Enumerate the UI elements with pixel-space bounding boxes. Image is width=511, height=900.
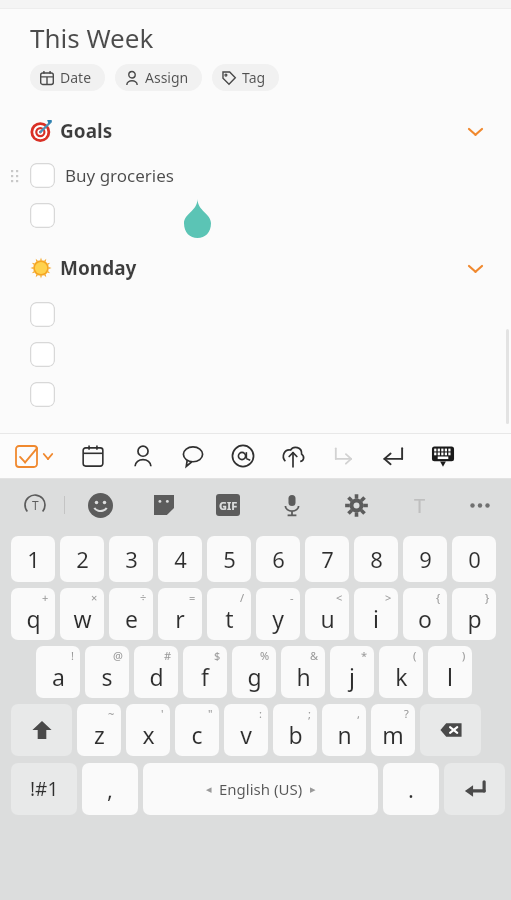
button[interactable]: # xyxy=(134,646,178,698)
button[interactable]: 8 xyxy=(354,536,398,582)
button[interactable]: Checkbox xyxy=(30,302,55,327)
button[interactable]: Collapse xyxy=(457,116,493,146)
button[interactable]: Comment xyxy=(168,434,218,478)
button[interactable]: Checkbox xyxy=(30,203,55,228)
button[interactable]: Shift xyxy=(11,704,72,756)
staticText: z xyxy=(94,719,105,750)
button[interactable]: ' xyxy=(126,704,170,756)
button[interactable]: 2 xyxy=(60,536,104,582)
button[interactable]: 9 xyxy=(403,536,447,582)
button[interactable]: " xyxy=(175,704,219,756)
button[interactable]: Checkbox xyxy=(30,382,55,407)
button[interactable]: } xyxy=(452,588,496,640)
button[interactable]: Calendar xyxy=(68,434,118,478)
button[interactable]: Checklist xyxy=(0,434,68,478)
staticText: * xyxy=(361,648,368,663)
button[interactable]: Assign xyxy=(115,64,202,91)
button[interactable]: ; xyxy=(273,704,317,756)
button[interactable]: ◂ xyxy=(143,763,378,815)
button[interactable]: & xyxy=(281,646,325,698)
staticText: x xyxy=(142,719,155,750)
staticText: j xyxy=(349,661,355,692)
button[interactable]: Checkbox xyxy=(0,155,511,195)
button[interactable]: / xyxy=(207,588,251,640)
staticText: b xyxy=(288,719,303,750)
button[interactable]: Backspace xyxy=(420,704,481,756)
staticText: Tag xyxy=(242,68,266,87)
button[interactable]: < xyxy=(305,588,349,640)
button[interactable]: Goals xyxy=(0,116,511,146)
button[interactable]: { xyxy=(403,588,447,640)
button[interactable]: Voice input xyxy=(271,484,313,526)
button[interactable]: New line xyxy=(368,434,418,478)
button[interactable]: ~ xyxy=(77,704,121,756)
staticText: ~ xyxy=(108,706,115,721)
button[interactable]: , xyxy=(322,704,366,756)
button[interactable]: ( xyxy=(379,646,423,698)
button[interactable]: Keyboard xyxy=(418,434,468,478)
button[interactable]: 3 xyxy=(109,536,153,582)
staticText: { xyxy=(436,590,441,605)
button[interactable]: Checkbox xyxy=(0,195,511,235)
button[interactable]: , xyxy=(82,763,138,815)
button[interactable]: Sticker xyxy=(143,484,185,526)
staticText: v xyxy=(240,719,252,750)
button[interactable]: !#1 xyxy=(11,763,77,815)
button[interactable]: Settings xyxy=(335,484,377,526)
button[interactable]: Emoji xyxy=(79,484,121,526)
button[interactable]: : xyxy=(224,704,268,756)
button[interactable]: More options xyxy=(459,484,501,526)
staticText: w xyxy=(73,603,92,634)
button[interactable]: Collapse xyxy=(457,253,493,283)
button[interactable]: - xyxy=(256,588,300,640)
button[interactable]: Assignee xyxy=(118,434,168,478)
button[interactable]: ! xyxy=(36,646,80,698)
button[interactable]: $ xyxy=(183,646,227,698)
button[interactable]: . xyxy=(383,763,439,815)
staticText: ; xyxy=(308,706,311,721)
button[interactable]: + xyxy=(11,588,55,640)
button[interactable]: GIF xyxy=(207,484,249,526)
button[interactable]: ÷ xyxy=(109,588,153,640)
button[interactable]: 1 xyxy=(11,536,55,582)
button[interactable]: Date xyxy=(30,64,105,91)
button[interactable]: 0 xyxy=(452,536,496,582)
button[interactable]: Indent xyxy=(318,434,368,478)
button[interactable]: 5 xyxy=(207,536,251,582)
staticText: 8 xyxy=(370,544,383,574)
button[interactable]: Monday xyxy=(0,253,511,283)
button[interactable]: Checkbox xyxy=(30,342,55,367)
button[interactable]: Translate xyxy=(14,484,56,526)
staticText: l xyxy=(447,661,453,692)
staticText: t xyxy=(225,603,234,634)
staticText: ( xyxy=(413,648,417,663)
staticText: This Week xyxy=(30,20,154,55)
staticText: & xyxy=(310,648,319,663)
button[interactable]: Tag xyxy=(212,64,279,91)
button[interactable]: Handwriting xyxy=(399,484,441,526)
button[interactable]: ? xyxy=(371,704,415,756)
button[interactable]: 7 xyxy=(305,536,349,582)
button[interactable]: Mention xyxy=(218,434,268,478)
staticText: 2 xyxy=(76,544,89,574)
staticText: @ xyxy=(113,648,123,663)
staticText: 9 xyxy=(419,544,432,574)
staticText: - xyxy=(290,590,294,605)
staticText: > xyxy=(385,590,392,605)
button[interactable]: = xyxy=(158,588,202,640)
button[interactable]: * xyxy=(330,646,374,698)
button[interactable]: Checkbox xyxy=(30,163,55,188)
button[interactable]: 6 xyxy=(256,536,300,582)
button[interactable]: Upload xyxy=(268,434,318,478)
button[interactable]: % xyxy=(232,646,276,698)
button[interactable]: ) xyxy=(428,646,472,698)
button[interactable]: Enter xyxy=(444,763,505,815)
button[interactable]: @ xyxy=(85,646,129,698)
button[interactable]: > xyxy=(354,588,398,640)
button[interactable]: × xyxy=(60,588,104,640)
button[interactable]: 4 xyxy=(158,536,202,582)
staticText: !#1 xyxy=(30,776,59,802)
